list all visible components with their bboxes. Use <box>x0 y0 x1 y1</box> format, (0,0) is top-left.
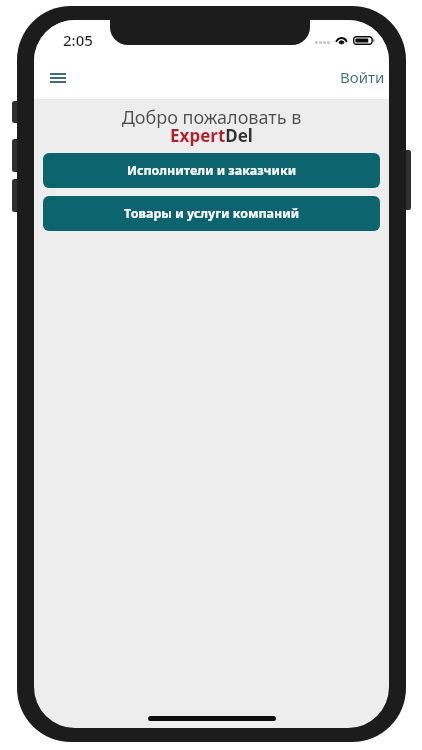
staticText: Войти <box>340 67 385 87</box>
staticText: Товары и услуги компаний <box>124 205 300 222</box>
staticText: ExpertDel <box>34 124 389 147</box>
staticText: 2:05 <box>63 30 93 50</box>
button[interactable]: Исполнители и заказчики <box>43 153 380 188</box>
staticText: Исполнители и заказчики <box>127 162 297 179</box>
button[interactable]: Товары и услуги компаний <box>43 196 380 231</box>
button[interactable]: Меню <box>38 60 78 96</box>
button[interactable]: Войти <box>333 59 389 95</box>
staticText: Добро пожаловать в <box>34 105 389 130</box>
